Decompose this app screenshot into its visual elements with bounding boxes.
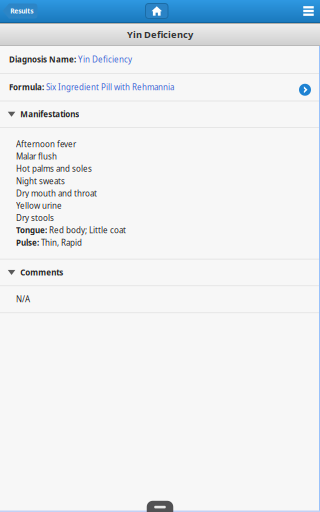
- staticText: Night sweats: [16, 176, 65, 186]
- staticText: Formula:: [9, 82, 46, 93]
- staticText: Thin, Rapid: [41, 237, 82, 248]
- staticText: N/A: [16, 294, 30, 305]
- staticText: Manifestations: [20, 109, 79, 120]
- staticText: Results: [10, 6, 33, 16]
- staticText: Yin Deficiency: [127, 28, 193, 41]
- button[interactable]: Results: [2, 3, 37, 18]
- staticText: Six Ingredient Pill with Rehmannia: [46, 82, 174, 93]
- staticText: Red body; Little coat: [49, 225, 126, 236]
- staticText: Yellow urine: [16, 200, 62, 211]
- staticText: Tongue:: [16, 225, 49, 236]
- button[interactable]: Comments: [0, 260, 320, 285]
- staticText: Dry mouth and throat: [16, 188, 97, 199]
- staticText: Afternoon fever: [16, 139, 76, 150]
- button[interactable]: Manifestations: [0, 101, 320, 127]
- button[interactable]: Home: [145, 3, 168, 18]
- staticText: Comments: [20, 267, 63, 278]
- staticText: Malar flush: [16, 151, 57, 162]
- button[interactable]: Formula:: [0, 74, 320, 100]
- staticText: Dry stools: [16, 212, 54, 223]
- button[interactable]: Navigation handle: [147, 501, 173, 512]
- staticText: Yin Deficiency: [78, 54, 132, 65]
- staticText: Diagnosis Name:: [9, 54, 78, 65]
- staticText: Hot palms and soles: [16, 163, 92, 174]
- button[interactable]: Menu: [299, 0, 317, 22]
- staticText: Pulse:: [16, 237, 41, 248]
